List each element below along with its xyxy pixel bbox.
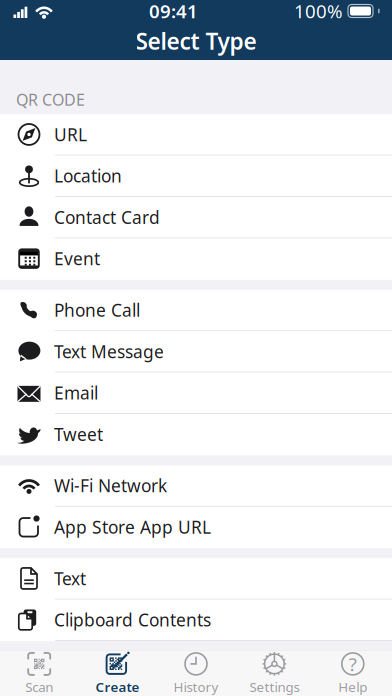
staticText: Clipboard Contents bbox=[54, 608, 211, 631]
staticText: 09:41 bbox=[149, 0, 198, 23]
button[interactable]: ? bbox=[314, 650, 392, 696]
staticText: Text bbox=[54, 567, 86, 590]
button[interactable]: URL bbox=[0, 114, 392, 156]
button[interactable]: Location bbox=[0, 156, 392, 197]
staticText: Tweet bbox=[54, 423, 103, 446]
button[interactable]: Wi-Fi Network bbox=[0, 465, 392, 507]
button[interactable]: Text bbox=[0, 558, 392, 600]
staticText: QR CODE bbox=[16, 89, 85, 110]
button[interactable]: Clipboard Contents bbox=[0, 600, 392, 641]
staticText: Help bbox=[338, 678, 367, 696]
staticText: Location bbox=[54, 164, 122, 187]
button[interactable]: Scan bbox=[0, 650, 78, 696]
staticText: Scan bbox=[25, 678, 53, 696]
button[interactable]: Settings bbox=[235, 650, 314, 696]
staticText: Create bbox=[96, 678, 140, 696]
button[interactable]: Contact Card bbox=[0, 197, 392, 238]
button[interactable]: History bbox=[157, 650, 235, 696]
staticText: Settings bbox=[249, 678, 299, 696]
button[interactable]: Tweet bbox=[0, 414, 392, 455]
staticText: App Store App URL bbox=[54, 515, 211, 538]
button[interactable]: Email bbox=[0, 373, 392, 414]
button[interactable]: Create bbox=[78, 650, 157, 696]
staticText: History bbox=[173, 678, 218, 696]
button[interactable]: Text Message bbox=[0, 331, 392, 373]
staticText: ? bbox=[349, 651, 357, 676]
staticText: Wi-Fi Network bbox=[54, 474, 167, 497]
staticText: URL bbox=[54, 123, 87, 146]
staticText: Text Message bbox=[54, 340, 164, 363]
button[interactable]: Phone Call bbox=[0, 290, 392, 331]
button[interactable]: App Store App URL bbox=[0, 507, 392, 548]
button[interactable]: Event bbox=[0, 238, 392, 280]
staticText: Phone Call bbox=[54, 298, 140, 321]
staticText: Select Type bbox=[135, 26, 256, 56]
staticText: Event bbox=[54, 247, 100, 270]
staticText: Contact Card bbox=[54, 206, 160, 229]
staticText: Email bbox=[54, 381, 98, 404]
staticText: 100% bbox=[294, 0, 343, 23]
